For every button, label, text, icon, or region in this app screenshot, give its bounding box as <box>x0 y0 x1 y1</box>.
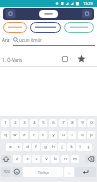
button[interactable]: p <box>87 131 95 139</box>
button[interactable]: l <box>76 143 84 151</box>
staticText: 3 <box>23 120 26 126</box>
button[interactable]: f <box>32 143 40 151</box>
button[interactable] <box>75 167 96 177</box>
button[interactable] <box>1 155 11 163</box>
button[interactable] <box>85 155 96 163</box>
staticText: Türkçe <box>38 170 49 175</box>
button[interactable]: e <box>20 131 28 139</box>
button[interactable] <box>62 56 68 62</box>
staticText: 1 <box>4 120 7 126</box>
staticText: 13:29 <box>83 1 93 6</box>
button[interactable]: ?123 <box>1 167 11 177</box>
button[interactable]: w <box>11 131 19 139</box>
staticText: v <box>45 156 48 162</box>
button[interactable]: 8 <box>68 119 76 127</box>
staticText: y <box>52 132 55 138</box>
button[interactable]: x <box>23 155 31 163</box>
button[interactable] <box>30 22 61 33</box>
staticText: r <box>33 132 35 138</box>
button[interactable]: m <box>71 155 79 163</box>
staticText: d <box>26 144 29 150</box>
staticText: l <box>79 144 81 150</box>
button[interactable]: 0 <box>87 119 95 127</box>
button[interactable]: ş <box>84 143 92 151</box>
button[interactable]: . <box>64 167 74 177</box>
staticText: e <box>23 132 26 138</box>
staticText: o <box>81 132 84 138</box>
button[interactable]: o <box>78 131 86 139</box>
button[interactable] <box>3 8 94 20</box>
button[interactable]: 1 <box>1 119 9 127</box>
staticText: 1. Ö-Varis <box>2 57 23 63</box>
button[interactable] <box>64 22 94 33</box>
staticText: h <box>52 144 55 150</box>
button[interactable] <box>0 52 97 66</box>
button[interactable]: d <box>23 143 31 151</box>
button[interactable]: 7 <box>59 119 67 127</box>
staticText: ?123 <box>3 170 10 174</box>
staticText: 0 <box>90 120 93 126</box>
button[interactable]: y <box>49 131 57 139</box>
button[interactable]: r <box>30 131 38 139</box>
staticText: j <box>61 144 63 150</box>
staticText: m <box>73 156 77 162</box>
staticText: n <box>64 156 67 162</box>
button[interactable]: 4 <box>30 119 38 127</box>
button[interactable]: g <box>41 143 49 151</box>
staticText: ş <box>87 144 90 150</box>
staticText: b <box>54 156 57 162</box>
button[interactable]: k <box>67 143 75 151</box>
button[interactable]: 6 <box>49 119 57 127</box>
staticText: a <box>9 144 12 150</box>
button[interactable]: z <box>13 155 21 163</box>
button[interactable]: t <box>39 131 47 139</box>
staticText: c <box>35 156 38 162</box>
button[interactable] <box>39 10 58 18</box>
button[interactable]: ı <box>68 131 76 139</box>
staticText: 7 <box>62 120 65 126</box>
button[interactable]: v <box>42 155 50 163</box>
staticText: 9 <box>81 120 84 126</box>
button[interactable]: 3 <box>20 119 28 127</box>
button[interactable]: b <box>51 155 59 163</box>
button[interactable]: Türkçe <box>23 167 63 177</box>
button[interactable]: u <box>59 131 67 139</box>
button[interactable]: s <box>14 143 22 151</box>
staticText: k <box>70 144 73 150</box>
staticText: s <box>17 144 20 150</box>
staticText: z <box>16 156 18 162</box>
button[interactable]: n <box>61 155 69 163</box>
staticText: p <box>90 132 93 138</box>
button[interactable]: 2 <box>11 119 19 127</box>
staticText: f <box>35 144 37 150</box>
button[interactable] <box>3 22 27 33</box>
staticText: 4 <box>33 120 36 126</box>
button[interactable]: q <box>1 131 9 139</box>
staticText: q <box>4 132 7 138</box>
button[interactable] <box>12 167 22 177</box>
button[interactable]: c <box>32 155 40 163</box>
button[interactable]: j <box>58 143 66 151</box>
staticText: ı <box>71 132 73 138</box>
button[interactable]: a <box>6 143 14 151</box>
staticText: uzun ömür <box>19 37 43 43</box>
staticText: 5 <box>42 120 45 126</box>
staticText: g <box>44 144 47 150</box>
button[interactable] <box>77 54 86 63</box>
staticText: 8 <box>71 120 74 126</box>
staticText: 2 <box>14 120 17 126</box>
button[interactable]: h <box>49 143 57 151</box>
staticText: . <box>68 169 70 175</box>
button[interactable]: 9 <box>78 119 86 127</box>
staticText: w <box>13 132 17 138</box>
staticText: x <box>26 156 29 162</box>
staticText: t <box>42 132 44 138</box>
staticText: Ara: <box>2 37 11 43</box>
staticText: u <box>62 132 65 138</box>
staticText: 6 <box>52 120 55 126</box>
button[interactable]: 5 <box>39 119 47 127</box>
